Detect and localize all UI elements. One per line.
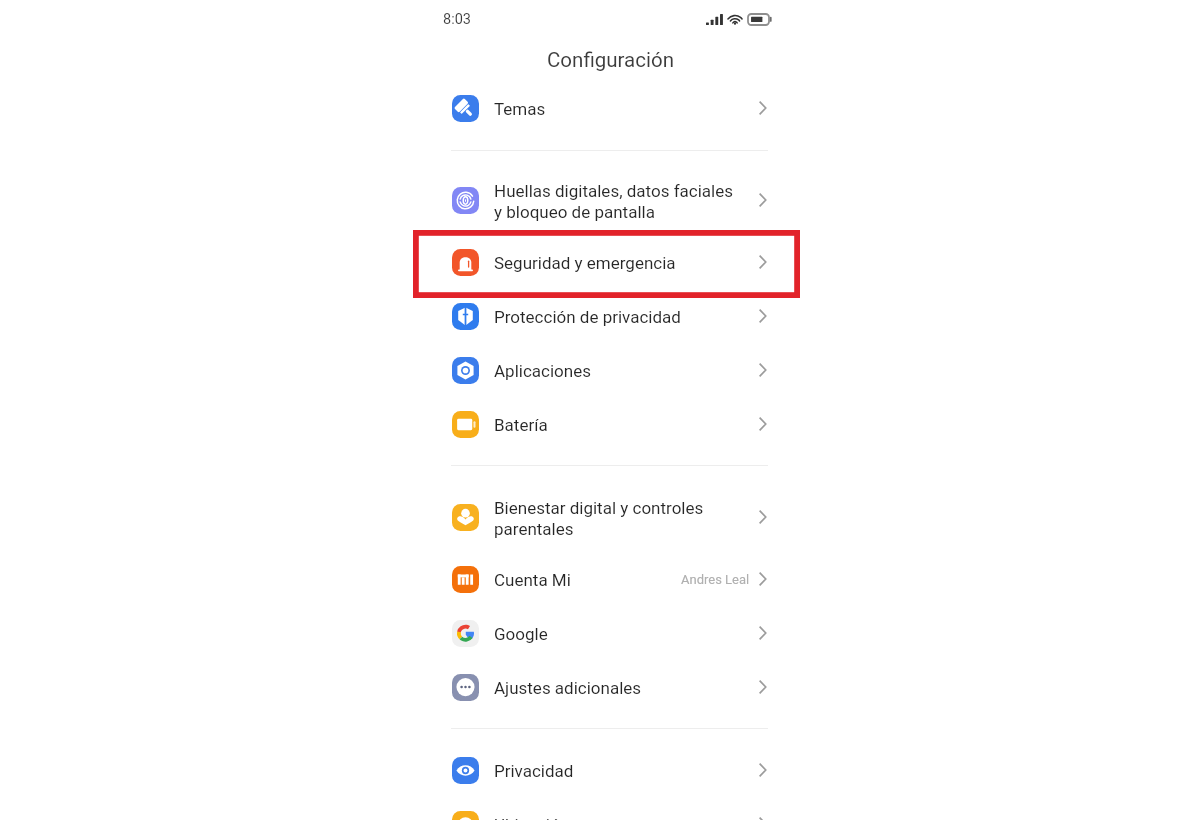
button[interactable]: Bienestar digital y controles parentales [413,482,799,552]
button[interactable]: Seguridad y emergencia [413,235,799,289]
button[interactable]: Huellas digitales, datos faciales y bloq… [413,165,799,235]
button[interactable]: Privacidad [413,743,799,797]
staticText: Privacidad [494,761,758,781]
button[interactable]: Cuenta Mi [413,552,799,606]
staticText: 8:03 [443,11,471,28]
button[interactable]: Aplicaciones [413,343,799,397]
staticText: Bienestar digital y controles parentales [494,498,758,539]
button[interactable]: Google [413,606,799,660]
staticText: Protección de privacidad [494,307,758,327]
staticText: Temas [494,99,758,119]
staticText: Batería [494,415,758,435]
staticText: Google [494,624,758,644]
staticText: Cuenta Mi [494,570,681,590]
staticText: Configuración [547,48,674,72]
button[interactable]: Ajustes adicionales [413,660,799,714]
staticText: Ubicación [494,815,758,820]
staticText: Huellas digitales, datos faciales y bloq… [494,181,758,222]
staticText: Aplicaciones [494,361,758,381]
button[interactable]: Batería [413,397,799,451]
button[interactable]: Temas [413,81,799,135]
staticText: Andres Leal [681,572,750,587]
staticText: Seguridad y emergencia [494,253,758,273]
button[interactable]: Protección de privacidad [413,289,799,343]
staticText: Ajustes adicionales [494,678,758,698]
button[interactable]: Ubicación [413,797,799,820]
